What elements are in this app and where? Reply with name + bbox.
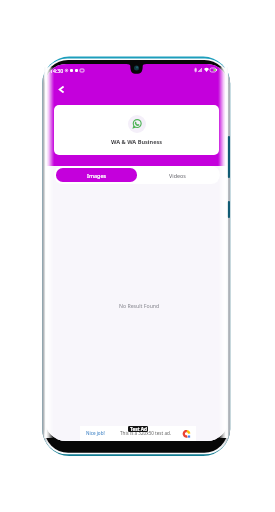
staticText: Test Ad bbox=[130, 426, 147, 432]
button[interactable]: WA & WA Business bbox=[54, 105, 219, 155]
staticText: This is a 320x50 test ad. bbox=[120, 430, 172, 436]
button[interactable]: Back bbox=[51, 79, 71, 99]
staticText: Videos bbox=[169, 172, 186, 179]
button[interactable]: Images bbox=[56, 168, 137, 182]
button[interactable]: Videos bbox=[137, 168, 218, 182]
staticText: Images bbox=[87, 172, 107, 179]
staticText: 14:30 bbox=[50, 67, 64, 74]
staticText: WA & WA Business bbox=[111, 138, 163, 146]
staticText: Nice job! bbox=[86, 430, 105, 436]
button[interactable]: Nice job! bbox=[80, 426, 196, 441]
staticText: No Result Found bbox=[119, 302, 160, 309]
